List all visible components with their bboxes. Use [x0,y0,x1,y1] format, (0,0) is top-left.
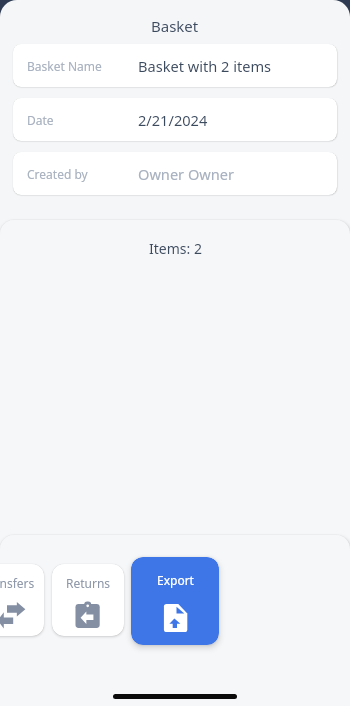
staticText: Basket [151,16,199,36]
staticText: Transfers [0,575,35,591]
button[interactable]: Date [13,98,337,141]
staticText: Created by [27,166,88,182]
staticText: Export [157,572,194,588]
staticText: Items: 2 [149,239,202,258]
staticText: Basket Name [27,58,102,74]
button[interactable]: Basket Name [13,44,337,87]
staticText: Returns [66,575,111,591]
button[interactable]: Export [131,557,219,645]
button[interactable]: Returns [52,564,124,636]
button[interactable]: Transfers [0,564,44,636]
staticText: Basket with 2 items [138,56,272,76]
staticText: 2/21/2024 [138,110,208,130]
staticText: Date [27,112,54,128]
button[interactable]: Created by [13,152,337,195]
staticText: Owner Owner [138,164,235,184]
